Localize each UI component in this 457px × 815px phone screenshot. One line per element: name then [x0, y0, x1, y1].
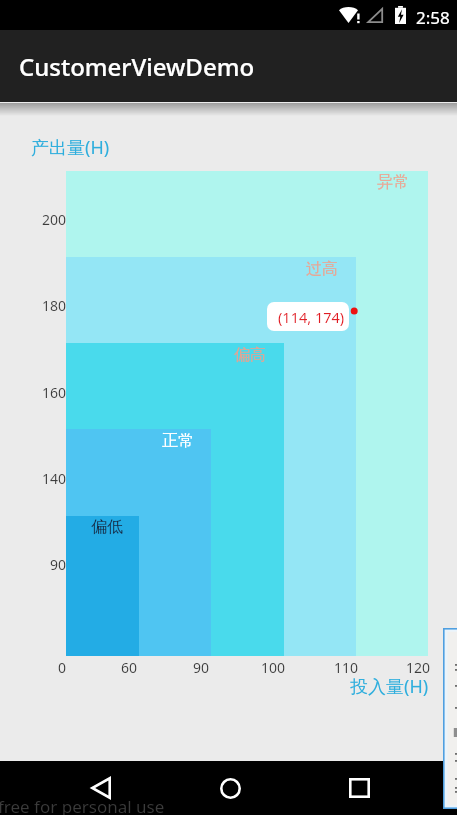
button[interactable]: (114, 174): [267, 302, 349, 331]
staticText: 180: [18, 296, 66, 315]
staticText: 偏低: [83, 517, 123, 537]
staticText: 2:58: [416, 6, 450, 29]
staticText: CustomerViewDemo: [19, 50, 255, 83]
staticText: 偏高: [226, 345, 266, 365]
staticText: 120: [398, 658, 438, 677]
staticText: 60: [109, 658, 149, 677]
staticText: 正常: [154, 431, 194, 451]
staticText: 140: [18, 469, 66, 488]
button[interactable]: Home: [200, 761, 260, 815]
staticText: 160: [18, 383, 66, 402]
staticText: 90: [181, 658, 221, 677]
staticText: 90: [18, 555, 66, 574]
button[interactable]: Back: [71, 761, 131, 815]
staticText: free for personal use: [0, 795, 165, 815]
button[interactable]: Recent apps: [329, 761, 389, 815]
staticText: 0: [42, 658, 82, 677]
staticText: 100: [253, 658, 293, 677]
staticText: 投入量(H): [350, 674, 429, 699]
staticText: 产出量(H): [31, 135, 110, 160]
staticText: (114, 174): [278, 307, 345, 327]
staticText: 110: [326, 658, 366, 677]
staticText: 过高: [298, 259, 338, 279]
staticText: 异常: [369, 172, 409, 192]
button[interactable]: [443, 628, 457, 809]
button[interactable]: CustomerViewDemo: [0, 30, 457, 102]
staticText: 200: [18, 210, 66, 229]
